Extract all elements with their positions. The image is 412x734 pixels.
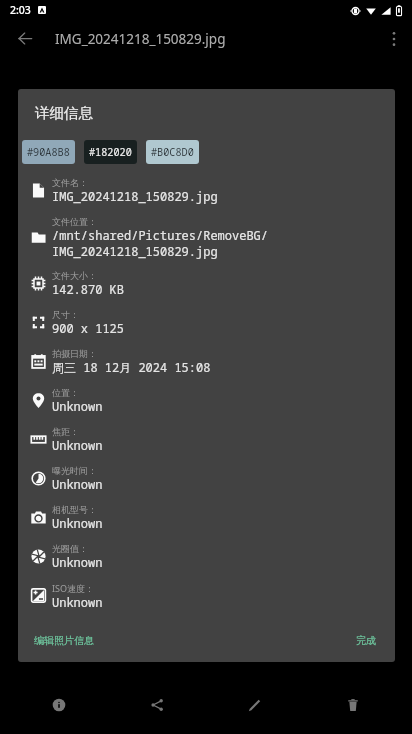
button[interactable]: Back: [0, 22, 49, 55]
staticText: Unknown: [52, 515, 103, 531]
staticText: Unknown: [52, 476, 103, 492]
button[interactable]: More options: [376, 22, 412, 55]
staticText: 相机型号：: [52, 504, 97, 515]
staticText: #B0C8D0: [151, 145, 194, 159]
button[interactable]: #90A8B8: [22, 140, 75, 164]
button[interactable]: #182020: [84, 140, 137, 164]
button[interactable]: 完成: [348, 626, 387, 655]
staticText: 142.870 KB: [52, 281, 125, 297]
staticText: 周三 18 12月 2024 15:08: [52, 359, 211, 375]
staticText: IMG_20241218_150829.jpg: [55, 30, 226, 48]
staticText: Unknown: [52, 437, 103, 453]
staticText: IMG_20241218_150829.jpg: [52, 188, 218, 204]
staticText: 900 x 1125: [52, 320, 125, 336]
staticText: 文件位置：: [52, 216, 97, 227]
staticText: IMG_20241218_150829.jpg: [52, 243, 218, 259]
button[interactable]: Share: [108, 675, 206, 734]
staticText: Unknown: [52, 594, 103, 610]
staticText: #90A8B8: [27, 145, 70, 159]
staticText: /mnt/shared/Pictures/RemoveBG/: [52, 227, 269, 243]
staticText: 曝光时间：: [52, 465, 97, 476]
button[interactable]: Info: [10, 675, 108, 734]
button[interactable]: #B0C8D0: [146, 140, 199, 164]
staticText: 完成: [356, 634, 376, 647]
staticText: 2:03: [10, 3, 31, 17]
staticText: 位置：: [52, 387, 79, 398]
staticText: #182020: [89, 145, 132, 159]
staticText: 文件名：: [52, 177, 88, 188]
staticText: 详细信息: [35, 104, 93, 122]
staticText: 光圈值：: [52, 543, 88, 554]
button[interactable]: Edit: [206, 675, 304, 734]
staticText: 尺寸：: [52, 309, 79, 320]
staticText: Unknown: [52, 554, 103, 570]
staticText: 编辑照片信息: [34, 634, 94, 647]
staticText: 焦距：: [52, 426, 79, 437]
button[interactable]: Delete: [304, 675, 402, 734]
staticText: ISO速度：: [52, 582, 95, 594]
staticText: 拍摄日期：: [52, 348, 97, 359]
button[interactable]: 编辑照片信息: [26, 626, 102, 655]
staticText: Unknown: [52, 398, 103, 414]
staticText: 文件大小：: [52, 270, 97, 281]
